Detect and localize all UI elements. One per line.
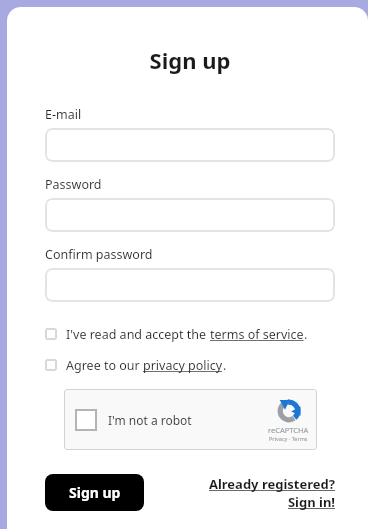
button[interactable] (45, 128, 335, 162)
staticText: I've read and accept the (66, 326, 210, 343)
staticText: reCAPTCHA (268, 425, 309, 435)
staticText: terms of service (210, 326, 304, 343)
staticText: Confirm password (45, 246, 153, 263)
button[interactable]: Accept terms of service (45, 323, 335, 345)
button[interactable] (45, 198, 335, 232)
staticText: I'm not a robot (108, 412, 192, 428)
staticText: . (304, 326, 308, 343)
staticText: privacy policy (143, 357, 223, 374)
staticText: Sign in! (287, 493, 335, 511)
staticText: Privacy · Terms (269, 435, 308, 442)
button[interactable]: Sign up (45, 474, 144, 511)
button[interactable]: Already registered? (208, 475, 335, 511)
button[interactable]: Agree to privacy policy (45, 354, 335, 376)
staticText: Sign up (69, 483, 121, 502)
staticText: E-mail (45, 106, 82, 123)
staticText: . (223, 357, 227, 374)
staticText: Agree to our (66, 357, 143, 374)
button[interactable]: I'm not a robot reCAPTCHA (64, 389, 317, 450)
staticText: Password (45, 176, 102, 193)
staticText: Sign up (45, 45, 335, 75)
staticText: Already registered? (208, 475, 335, 493)
button[interactable] (45, 268, 335, 302)
